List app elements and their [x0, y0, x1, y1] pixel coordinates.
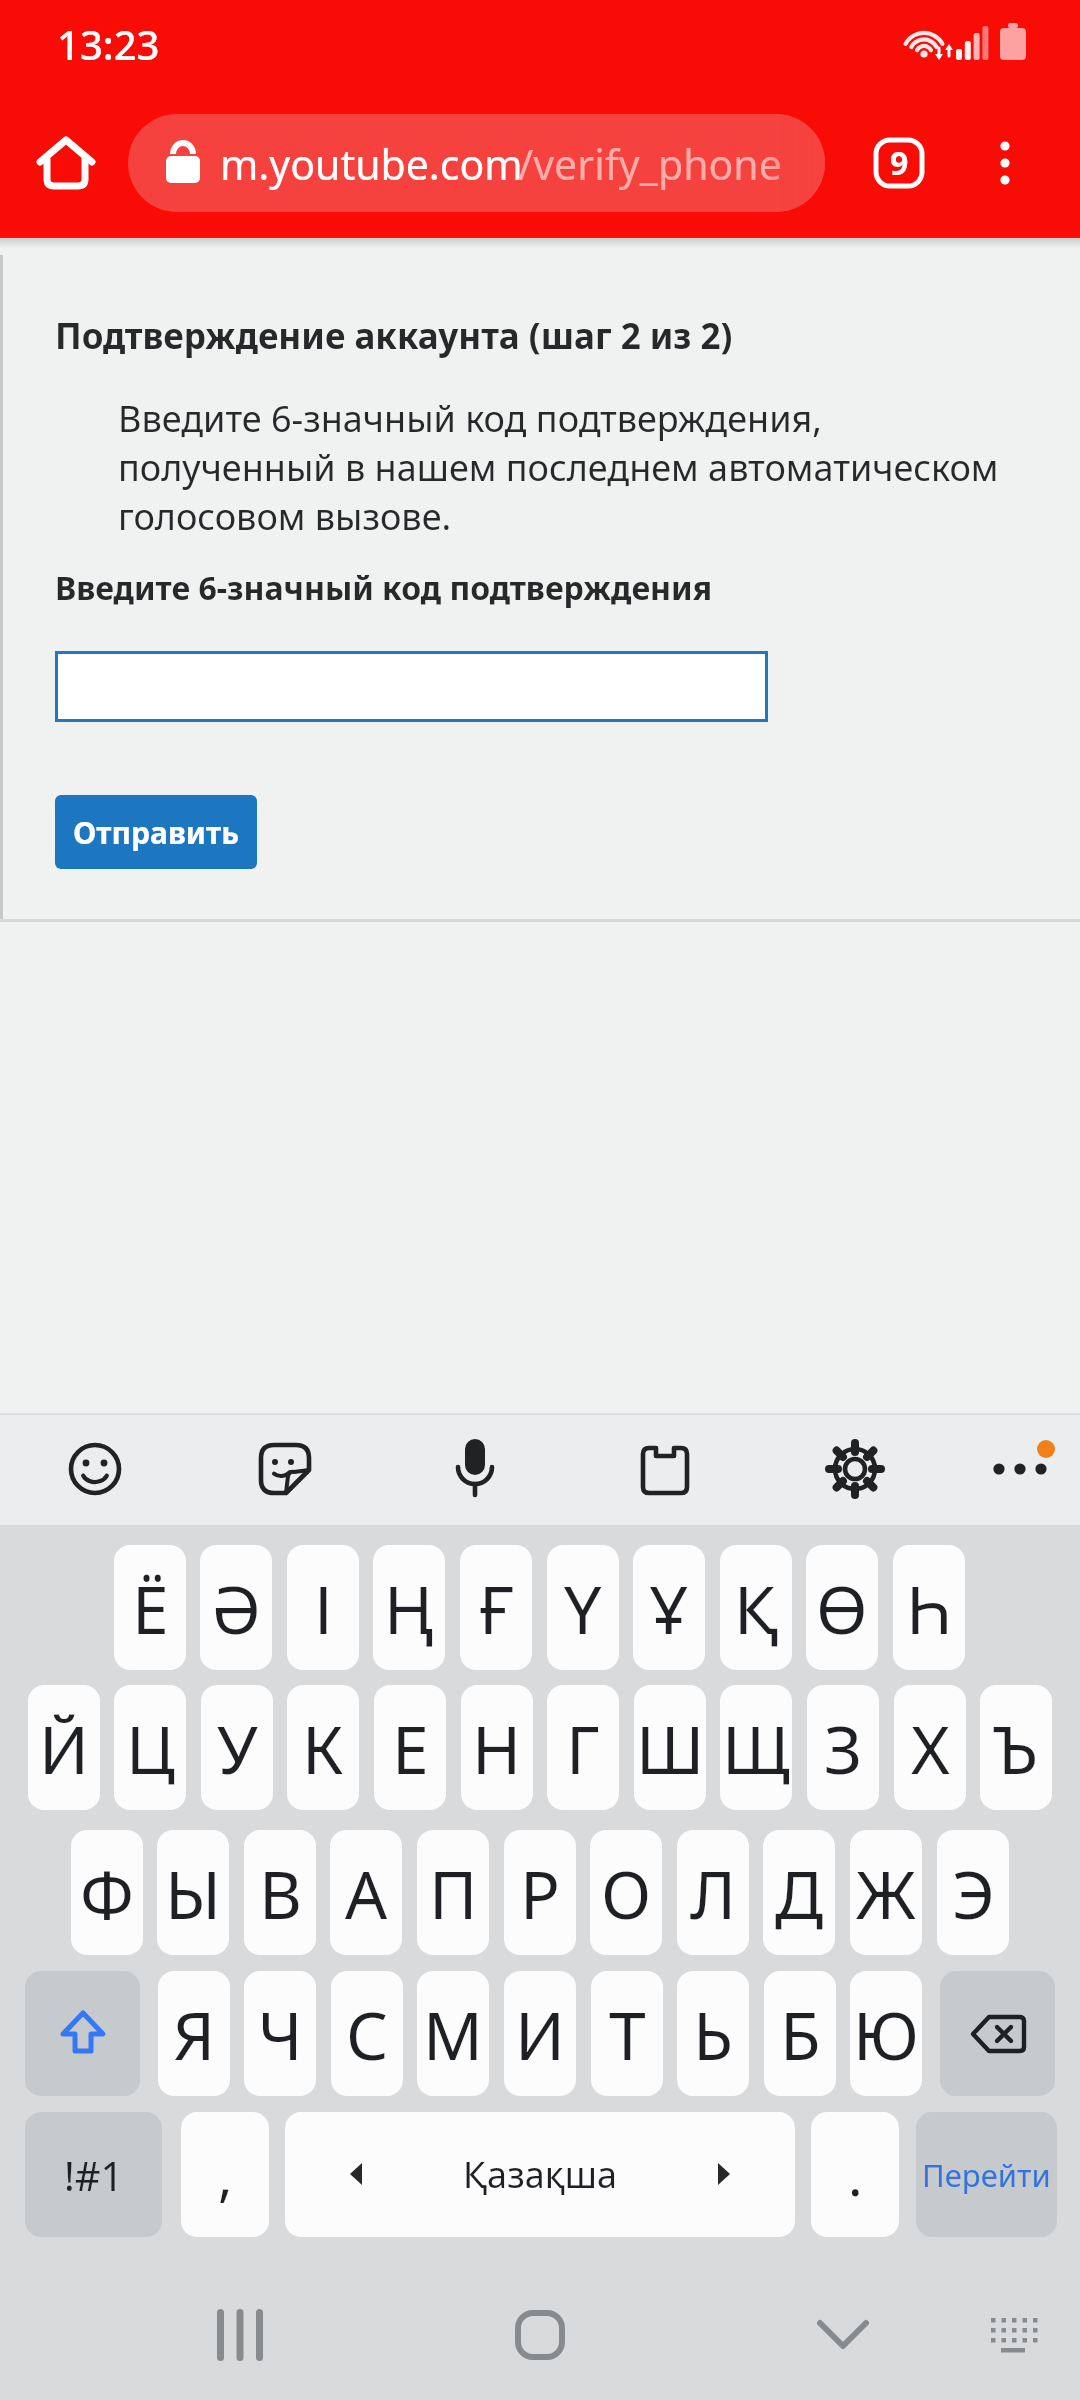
button[interactable]: Қазақша [285, 2112, 795, 2237]
staticText: Ц [126, 1703, 175, 1793]
button[interactable]: Ы [157, 1830, 229, 1955]
staticText: В [259, 1848, 302, 1938]
staticText: , [218, 2138, 233, 2212]
staticText: К [302, 1703, 344, 1793]
staticText: П [429, 1848, 478, 1938]
button[interactable] [783, 2275, 903, 2395]
button[interactable]: В [244, 1830, 316, 1955]
button[interactable]: Перейти [916, 2112, 1057, 2237]
button[interactable]: Ж [850, 1830, 922, 1955]
button[interactable]: П [417, 1830, 489, 1955]
staticText: Ф [80, 1848, 134, 1938]
button[interactable]: Ю [850, 1971, 922, 2096]
staticText: m.youtube.com [220, 136, 523, 192]
staticText: Б [780, 1989, 821, 2079]
staticText: Х [911, 1703, 950, 1793]
staticText: Г [566, 1703, 600, 1793]
staticText: !#1 [64, 2148, 124, 2202]
staticText: И [515, 1989, 565, 2079]
button[interactable]: З [807, 1685, 879, 1810]
button[interactable]: Л [677, 1830, 749, 1955]
button[interactable]: А [330, 1830, 402, 1955]
button[interactable] [55, 651, 768, 722]
button[interactable] [180, 2275, 300, 2395]
button[interactable] [55, 1429, 135, 1509]
button[interactable] [30, 126, 102, 200]
staticText: Ө [816, 1563, 868, 1653]
button[interactable]: Д [763, 1830, 835, 1955]
staticText: Қ [734, 1563, 779, 1653]
button[interactable]: Ұ [633, 1545, 705, 1670]
button[interactable]: Ү [547, 1545, 619, 1670]
staticText: Отправить [73, 812, 239, 853]
button[interactable]: . [811, 2112, 899, 2237]
staticText: /verify_phone [518, 136, 782, 192]
button[interactable]: Ф [71, 1830, 143, 1955]
button[interactable]: Р [504, 1830, 576, 1955]
button[interactable]: К [287, 1685, 359, 1810]
button[interactable]: Ш [634, 1685, 706, 1810]
button[interactable]: Ә [200, 1545, 272, 1670]
staticText: Введите 6-значный код подтверждения [55, 566, 712, 610]
staticText: Ы [165, 1848, 222, 1938]
button[interactable] [985, 134, 1025, 192]
button[interactable]: !#1 [25, 2112, 162, 2237]
button[interactable]: Е [374, 1685, 446, 1810]
staticText: Я [173, 1989, 216, 2079]
staticText: З [824, 1703, 863, 1793]
staticText: 13:23 [57, 17, 160, 71]
button[interactable] [625, 1429, 705, 1509]
button[interactable]: Һ [893, 1545, 965, 1670]
button[interactable]: Ё [114, 1545, 186, 1670]
button[interactable]: С [331, 1971, 403, 2096]
button[interactable]: Ч [244, 1971, 316, 2096]
button[interactable]: Б [764, 1971, 836, 2096]
staticText: Э [952, 1848, 995, 1938]
button[interactable]: Ц [114, 1685, 186, 1810]
staticText: М [423, 1989, 483, 2079]
staticText: І [314, 1563, 333, 1653]
button[interactable]: У [201, 1685, 273, 1810]
button[interactable] [940, 1971, 1055, 2096]
button[interactable]: М [417, 1971, 489, 2096]
button[interactable]: И [504, 1971, 576, 2096]
button[interactable] [963, 2285, 1063, 2385]
button[interactable]: Г [547, 1685, 619, 1810]
button[interactable]: Н [461, 1685, 533, 1810]
button[interactable]: m.youtube.com [128, 114, 825, 212]
staticText: Ғ [479, 1563, 514, 1653]
button[interactable]: Э [937, 1830, 1009, 1955]
button[interactable]: О [590, 1830, 662, 1955]
button[interactable] [435, 1425, 515, 1513]
staticText: О [601, 1848, 652, 1938]
button[interactable] [975, 1429, 1065, 1509]
button[interactable]: Ғ [460, 1545, 532, 1670]
staticText: Р [520, 1848, 560, 1938]
staticText: Перейти [922, 2154, 1051, 2196]
button[interactable]: Қ [720, 1545, 792, 1670]
button[interactable]: Й [28, 1685, 100, 1810]
button[interactable]: Ъ [980, 1685, 1052, 1810]
button[interactable]: , [181, 2112, 269, 2237]
staticText: Л [690, 1848, 737, 1938]
button[interactable]: Ь [677, 1971, 749, 2096]
button[interactable] [815, 1429, 895, 1509]
button[interactable]: Ң [373, 1545, 445, 1670]
staticText: Ұ [650, 1563, 688, 1653]
button[interactable]: Х [894, 1685, 966, 1810]
button[interactable]: І [287, 1545, 359, 1670]
staticText: Й [39, 1703, 89, 1793]
staticText: Ң [384, 1563, 434, 1653]
button[interactable]: Т [591, 1971, 663, 2096]
button[interactable]: Щ [720, 1685, 792, 1810]
staticText: Ъ [993, 1703, 1039, 1793]
button[interactable]: Ө [806, 1545, 878, 1670]
button[interactable] [245, 1429, 325, 1509]
button[interactable]: Я [158, 1971, 230, 2096]
button[interactable] [480, 2275, 600, 2395]
button[interactable]: Отправить [55, 795, 257, 869]
button[interactable] [25, 1971, 140, 2096]
staticText: Д [775, 1848, 824, 1938]
staticText: Ж [856, 1848, 916, 1938]
button[interactable]: 9 [870, 134, 928, 192]
